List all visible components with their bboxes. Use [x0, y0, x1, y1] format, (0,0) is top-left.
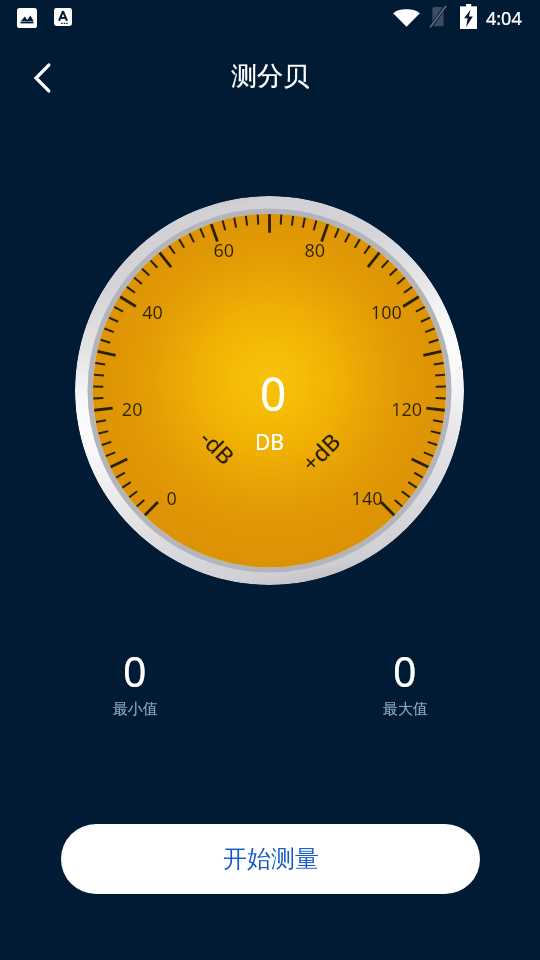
staticText: DB: [255, 428, 284, 457]
staticText: 测分贝: [231, 60, 309, 93]
button[interactable]: 开始测量: [61, 824, 480, 894]
button[interactable]: Decibel meter: [75, 196, 464, 585]
staticText: 0: [260, 362, 287, 425]
staticText: 0: [123, 643, 147, 699]
staticText: 0: [393, 643, 417, 699]
staticText: 开始测量: [223, 844, 319, 874]
staticText: 最小值: [113, 700, 158, 719]
staticText: 最大值: [383, 700, 428, 719]
button[interactable]: Back: [16, 52, 68, 104]
staticText: 4:04: [486, 6, 522, 31]
